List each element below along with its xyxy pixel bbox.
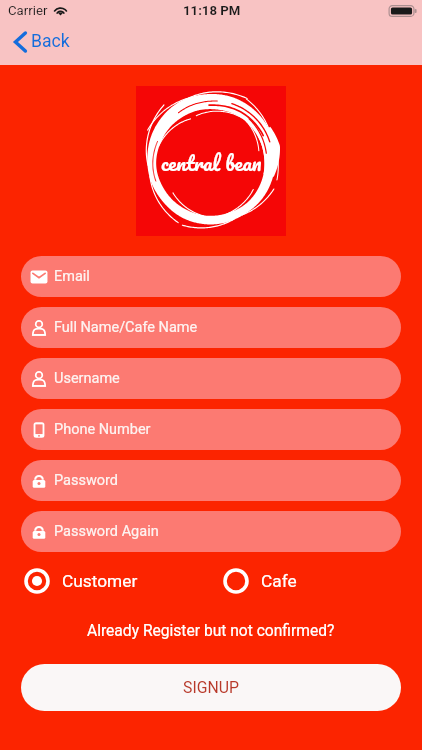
- staticText: Carrier: [8, 3, 48, 18]
- staticText: Phone Number: [54, 421, 151, 438]
- staticText: Email: [54, 268, 90, 285]
- button[interactable]: Password Again: [21, 511, 401, 552]
- staticText: Already Register but not confirmed?: [87, 622, 335, 640]
- staticText: Back: [31, 31, 70, 52]
- button[interactable]: Email: [21, 256, 401, 297]
- staticText: Password: [54, 472, 119, 489]
- staticText: SIGNUP: [183, 678, 239, 697]
- button[interactable]: Full Name/Cafe Name: [21, 307, 401, 348]
- staticText: central bean: [161, 145, 262, 180]
- staticText: Password Again: [54, 523, 159, 540]
- staticText: 11:18 PM: [183, 3, 241, 18]
- button[interactable]: Customer, selected: [20, 564, 142, 598]
- button[interactable]: Phone Number: [21, 409, 401, 450]
- staticText: Cafe: [261, 571, 297, 591]
- staticText: Username: [54, 370, 120, 387]
- button[interactable]: SIGNUP: [21, 664, 401, 711]
- button[interactable]: Username: [21, 358, 401, 399]
- staticText: Full Name/Cafe Name: [54, 319, 198, 336]
- button[interactable]: Password: [21, 460, 401, 501]
- button[interactable]: Cafe: [219, 564, 301, 598]
- button[interactable]: Back: [9, 27, 75, 56]
- staticText: Customer: [62, 571, 138, 591]
